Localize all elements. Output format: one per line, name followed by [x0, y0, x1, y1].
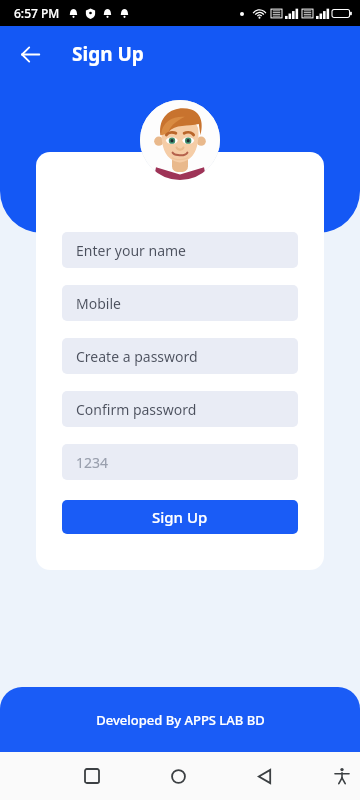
button[interactable]: Back	[8, 32, 52, 76]
staticText: 6:57 PM	[14, 5, 60, 21]
button[interactable]: Developed By APPS LAB BD	[0, 687, 360, 752]
staticText: Sign Up	[152, 507, 208, 527]
button[interactable]: Sign Up	[62, 500, 298, 534]
staticText: 1234	[76, 453, 109, 472]
button[interactable]: Back	[244, 756, 284, 796]
button[interactable]: Mobile	[62, 285, 298, 321]
staticText: Mobile	[76, 294, 121, 313]
button[interactable]: Create a password	[62, 338, 298, 374]
staticText: Confirm password	[76, 400, 197, 419]
staticText: Create a password	[76, 347, 198, 366]
staticText: Developed By APPS LAB BD	[96, 711, 265, 729]
button[interactable]: Recent apps	[72, 756, 112, 796]
button[interactable]: Accessibility	[324, 756, 360, 796]
staticText: Sign Up	[72, 41, 144, 67]
staticText: Enter your name	[76, 241, 186, 260]
button[interactable]: 1234	[62, 444, 298, 480]
button[interactable]: Confirm password	[62, 391, 298, 427]
button[interactable]: Enter your name	[62, 232, 298, 268]
button[interactable]: Home	[158, 756, 198, 796]
